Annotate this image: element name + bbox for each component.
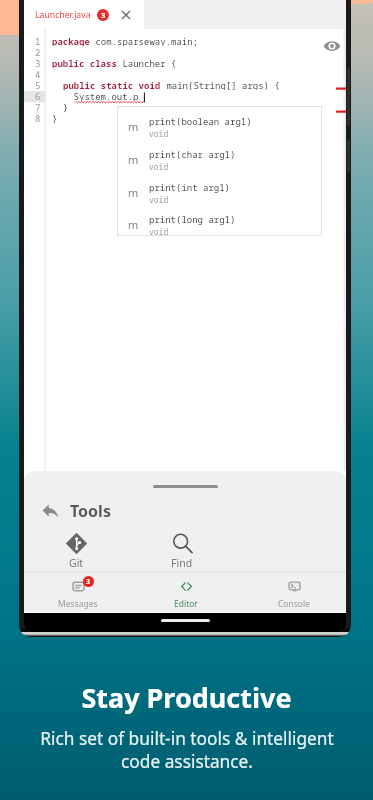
button[interactable]: m: [117, 143, 322, 176]
staticText: 5: [35, 79, 41, 90]
button[interactable]: m: [117, 110, 322, 143]
button[interactable]: Launcher.java: [24, 0, 144, 29]
staticText: Tools: [70, 500, 111, 522]
staticText: }: [52, 101, 69, 112]
staticText: package: [52, 35, 90, 46]
staticText: Launcher.java: [35, 9, 91, 21]
staticText: System.out.p: [52, 90, 139, 101]
button[interactable]: Find: [156, 532, 208, 570]
button[interactable]: Git: [50, 532, 102, 570]
staticText: main(String[] args) {: [161, 79, 280, 90]
staticText: print(boolean arg1): [149, 115, 252, 127]
staticText: }: [52, 112, 58, 123]
staticText: m: [128, 217, 139, 232]
staticText: Editor: [174, 598, 198, 610]
staticText: print(long arg1): [149, 213, 236, 225]
staticText: 2: [35, 46, 41, 57]
staticText: void: [149, 161, 169, 172]
staticText: 3: [101, 10, 106, 20]
button[interactable]: Close tab: [119, 8, 133, 22]
staticText: void: [149, 226, 169, 237]
button[interactable]: m: [117, 209, 322, 240]
button[interactable]: m: [117, 176, 322, 209]
staticText: Launcher {: [117, 57, 177, 68]
staticText: 8: [35, 112, 41, 123]
staticText: void: [149, 194, 169, 205]
staticText: m: [128, 185, 139, 200]
staticText: 6: [35, 90, 41, 101]
staticText: 3: [35, 57, 41, 68]
staticText: m: [128, 152, 139, 167]
staticText: Stay Productive: [81, 679, 292, 716]
staticText: print(char arg1): [149, 148, 236, 160]
staticText: com.sparseway.main;: [90, 35, 199, 46]
staticText: print(int arg1): [149, 181, 231, 193]
staticText: 4: [35, 68, 41, 79]
staticText: 3: [86, 577, 91, 587]
button[interactable]: Preview: [322, 36, 342, 56]
staticText: 1: [35, 35, 41, 46]
button[interactable]: Editor: [156, 572, 216, 612]
staticText: m: [128, 119, 139, 134]
button[interactable]: Tools: [24, 499, 134, 522]
staticText: public static void: [63, 79, 161, 90]
staticText: 7: [35, 101, 41, 112]
staticText: Git: [69, 556, 84, 570]
staticText: Messages: [58, 598, 98, 610]
staticText: void: [149, 128, 169, 139]
staticText: public class: [52, 57, 117, 68]
staticText: Find: [171, 556, 193, 570]
staticText: Console: [278, 598, 310, 610]
button[interactable]: Console: [264, 572, 324, 612]
staticText: Rich set of built-in tools & intelligent…: [40, 727, 334, 773]
button[interactable]: 3: [48, 572, 108, 612]
